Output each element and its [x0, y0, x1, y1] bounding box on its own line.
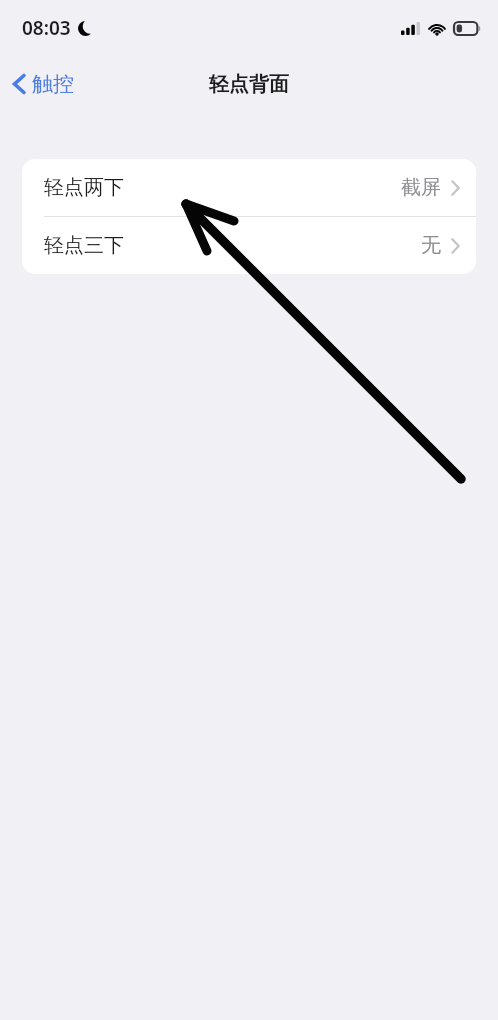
- staticText: 08:03: [22, 15, 71, 41]
- staticText: 触控: [32, 71, 74, 97]
- button[interactable]: 触控: [0, 65, 84, 103]
- staticText: 轻点背面: [209, 72, 289, 97]
- button[interactable]: 轻点三下: [22, 217, 476, 274]
- staticText: 截屏: [401, 175, 441, 200]
- staticText: 无: [421, 233, 441, 258]
- staticText: 轻点两下: [44, 175, 124, 200]
- button[interactable]: 轻点两下: [22, 159, 476, 216]
- staticText: 轻点三下: [44, 233, 124, 258]
